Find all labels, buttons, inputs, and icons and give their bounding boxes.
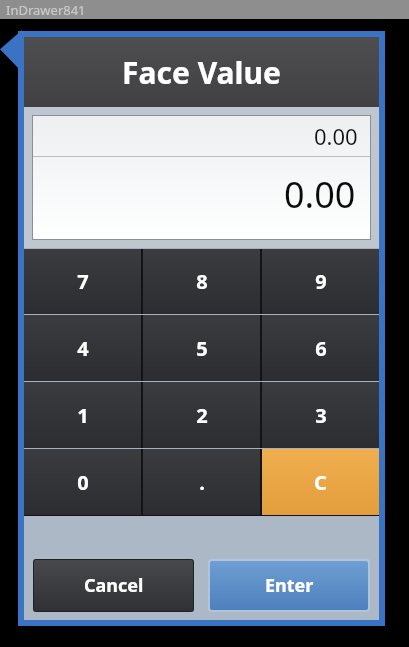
staticText: C — [314, 469, 327, 496]
button[interactable]: 4 — [24, 315, 141, 381]
staticText: 7 — [77, 268, 89, 295]
button[interactable]: 1 — [24, 382, 141, 448]
staticText: InDrawer841 — [6, 1, 86, 19]
staticText: 1 — [77, 402, 89, 429]
staticText: 0 — [77, 469, 89, 496]
button[interactable]: 9 — [262, 249, 379, 314]
button[interactable]: . — [143, 449, 260, 515]
staticText: 5 — [196, 335, 208, 362]
button[interactable]: 6 — [262, 315, 379, 381]
staticText: Enter — [265, 573, 314, 598]
button[interactable]: 2 — [143, 382, 260, 448]
staticText: 3 — [315, 402, 327, 429]
staticText: . — [199, 469, 205, 496]
staticText: 2 — [196, 402, 208, 429]
button[interactable]: 0 — [24, 449, 141, 515]
staticText: 0.00 — [314, 121, 358, 151]
button[interactable]: 5 — [143, 315, 260, 381]
staticText: 8 — [196, 268, 208, 295]
button[interactable]: 7 — [24, 249, 141, 314]
button[interactable]: Enter — [210, 561, 368, 610]
staticText: 9 — [315, 268, 327, 295]
staticText: Cancel — [84, 573, 144, 598]
button[interactable]: 8 — [143, 249, 260, 314]
staticText: 4 — [77, 335, 89, 362]
button[interactable]: C — [262, 449, 379, 515]
staticText: Face Value — [122, 52, 281, 93]
button[interactable]: 3 — [262, 382, 379, 448]
staticText: 6 — [315, 335, 327, 362]
staticText: 0.00 — [284, 170, 356, 219]
button[interactable]: Cancel — [34, 560, 193, 611]
